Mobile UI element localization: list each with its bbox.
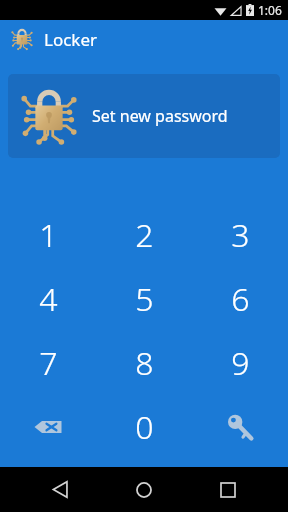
button[interactable]: 6 <box>192 267 288 331</box>
button[interactable]: Backspace <box>0 395 96 459</box>
staticText: 1:06 <box>258 2 282 18</box>
button[interactable]: 0 <box>96 395 192 459</box>
staticText: 8 <box>135 341 154 385</box>
staticText: 5 <box>135 277 154 321</box>
staticText: 7 <box>39 341 58 385</box>
button[interactable]: 2 <box>96 203 192 267</box>
button[interactable]: Back <box>36 467 84 512</box>
button[interactable]: 3 <box>192 203 288 267</box>
button[interactable]: 4 <box>0 267 96 331</box>
staticText: Locker <box>44 28 98 51</box>
button[interactable]: Recent apps <box>204 467 252 512</box>
staticText: 0 <box>135 405 154 449</box>
button[interactable]: 7 <box>0 331 96 395</box>
staticText: Set new password <box>92 105 228 127</box>
staticText: 9 <box>231 341 250 385</box>
staticText: 3 <box>231 213 250 257</box>
staticText: 4 <box>39 277 58 321</box>
staticText: 2 <box>135 213 154 257</box>
staticText: 6 <box>231 277 250 321</box>
button[interactable]: Unlock <box>192 395 288 459</box>
button[interactable]: Home <box>120 467 168 512</box>
button[interactable]: 5 <box>96 267 192 331</box>
button[interactable]: 1 <box>0 203 96 267</box>
button[interactable]: Set new password <box>8 74 280 158</box>
button[interactable]: 8 <box>96 331 192 395</box>
staticText: 1 <box>39 213 58 257</box>
button[interactable]: 9 <box>192 331 288 395</box>
